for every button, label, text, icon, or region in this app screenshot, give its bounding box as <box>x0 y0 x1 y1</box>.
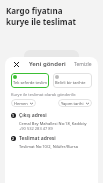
button[interactable]: Yapım tarihi <box>58 99 92 107</box>
button[interactable]: 2 <box>5 133 98 151</box>
button[interactable]: Hemen <box>11 99 36 107</box>
staticText: kurye ile teslimat <box>6 16 76 27</box>
button[interactable]: Belirli bir tarihte <box>53 73 92 88</box>
staticText: Yapım tarihi <box>61 101 84 106</box>
staticText: 1 <box>12 113 15 118</box>
staticText: Cemal Bey Mahallesi No:18, Kadıköy <box>19 121 87 126</box>
button[interactable]: Kapat <box>11 59 21 69</box>
button[interactable]: Tek seferde teslim <box>11 73 49 88</box>
staticText: Temizle <box>74 61 92 68</box>
staticText: 2 <box>12 136 15 141</box>
staticText: Kurye ile teslimat olarak gönderilir. <box>11 92 77 97</box>
staticText: Çıkış adresi <box>19 112 47 119</box>
staticText: Tek seferde teslim <box>13 80 47 85</box>
staticText: +90 532 283 47 89 <box>19 126 53 131</box>
staticText: Hemen <box>14 101 28 106</box>
staticText: Belirli bir tarihte <box>55 80 86 85</box>
staticText: Yeni gönderi <box>29 60 66 68</box>
staticText: Kargo fiyatına <box>6 5 63 16</box>
button[interactable]: 1 <box>5 110 98 133</box>
staticText: Teslimat adresi <box>19 135 56 142</box>
staticText: Teslimat No:10/2, Nilüfer/Bursa <box>19 144 78 149</box>
